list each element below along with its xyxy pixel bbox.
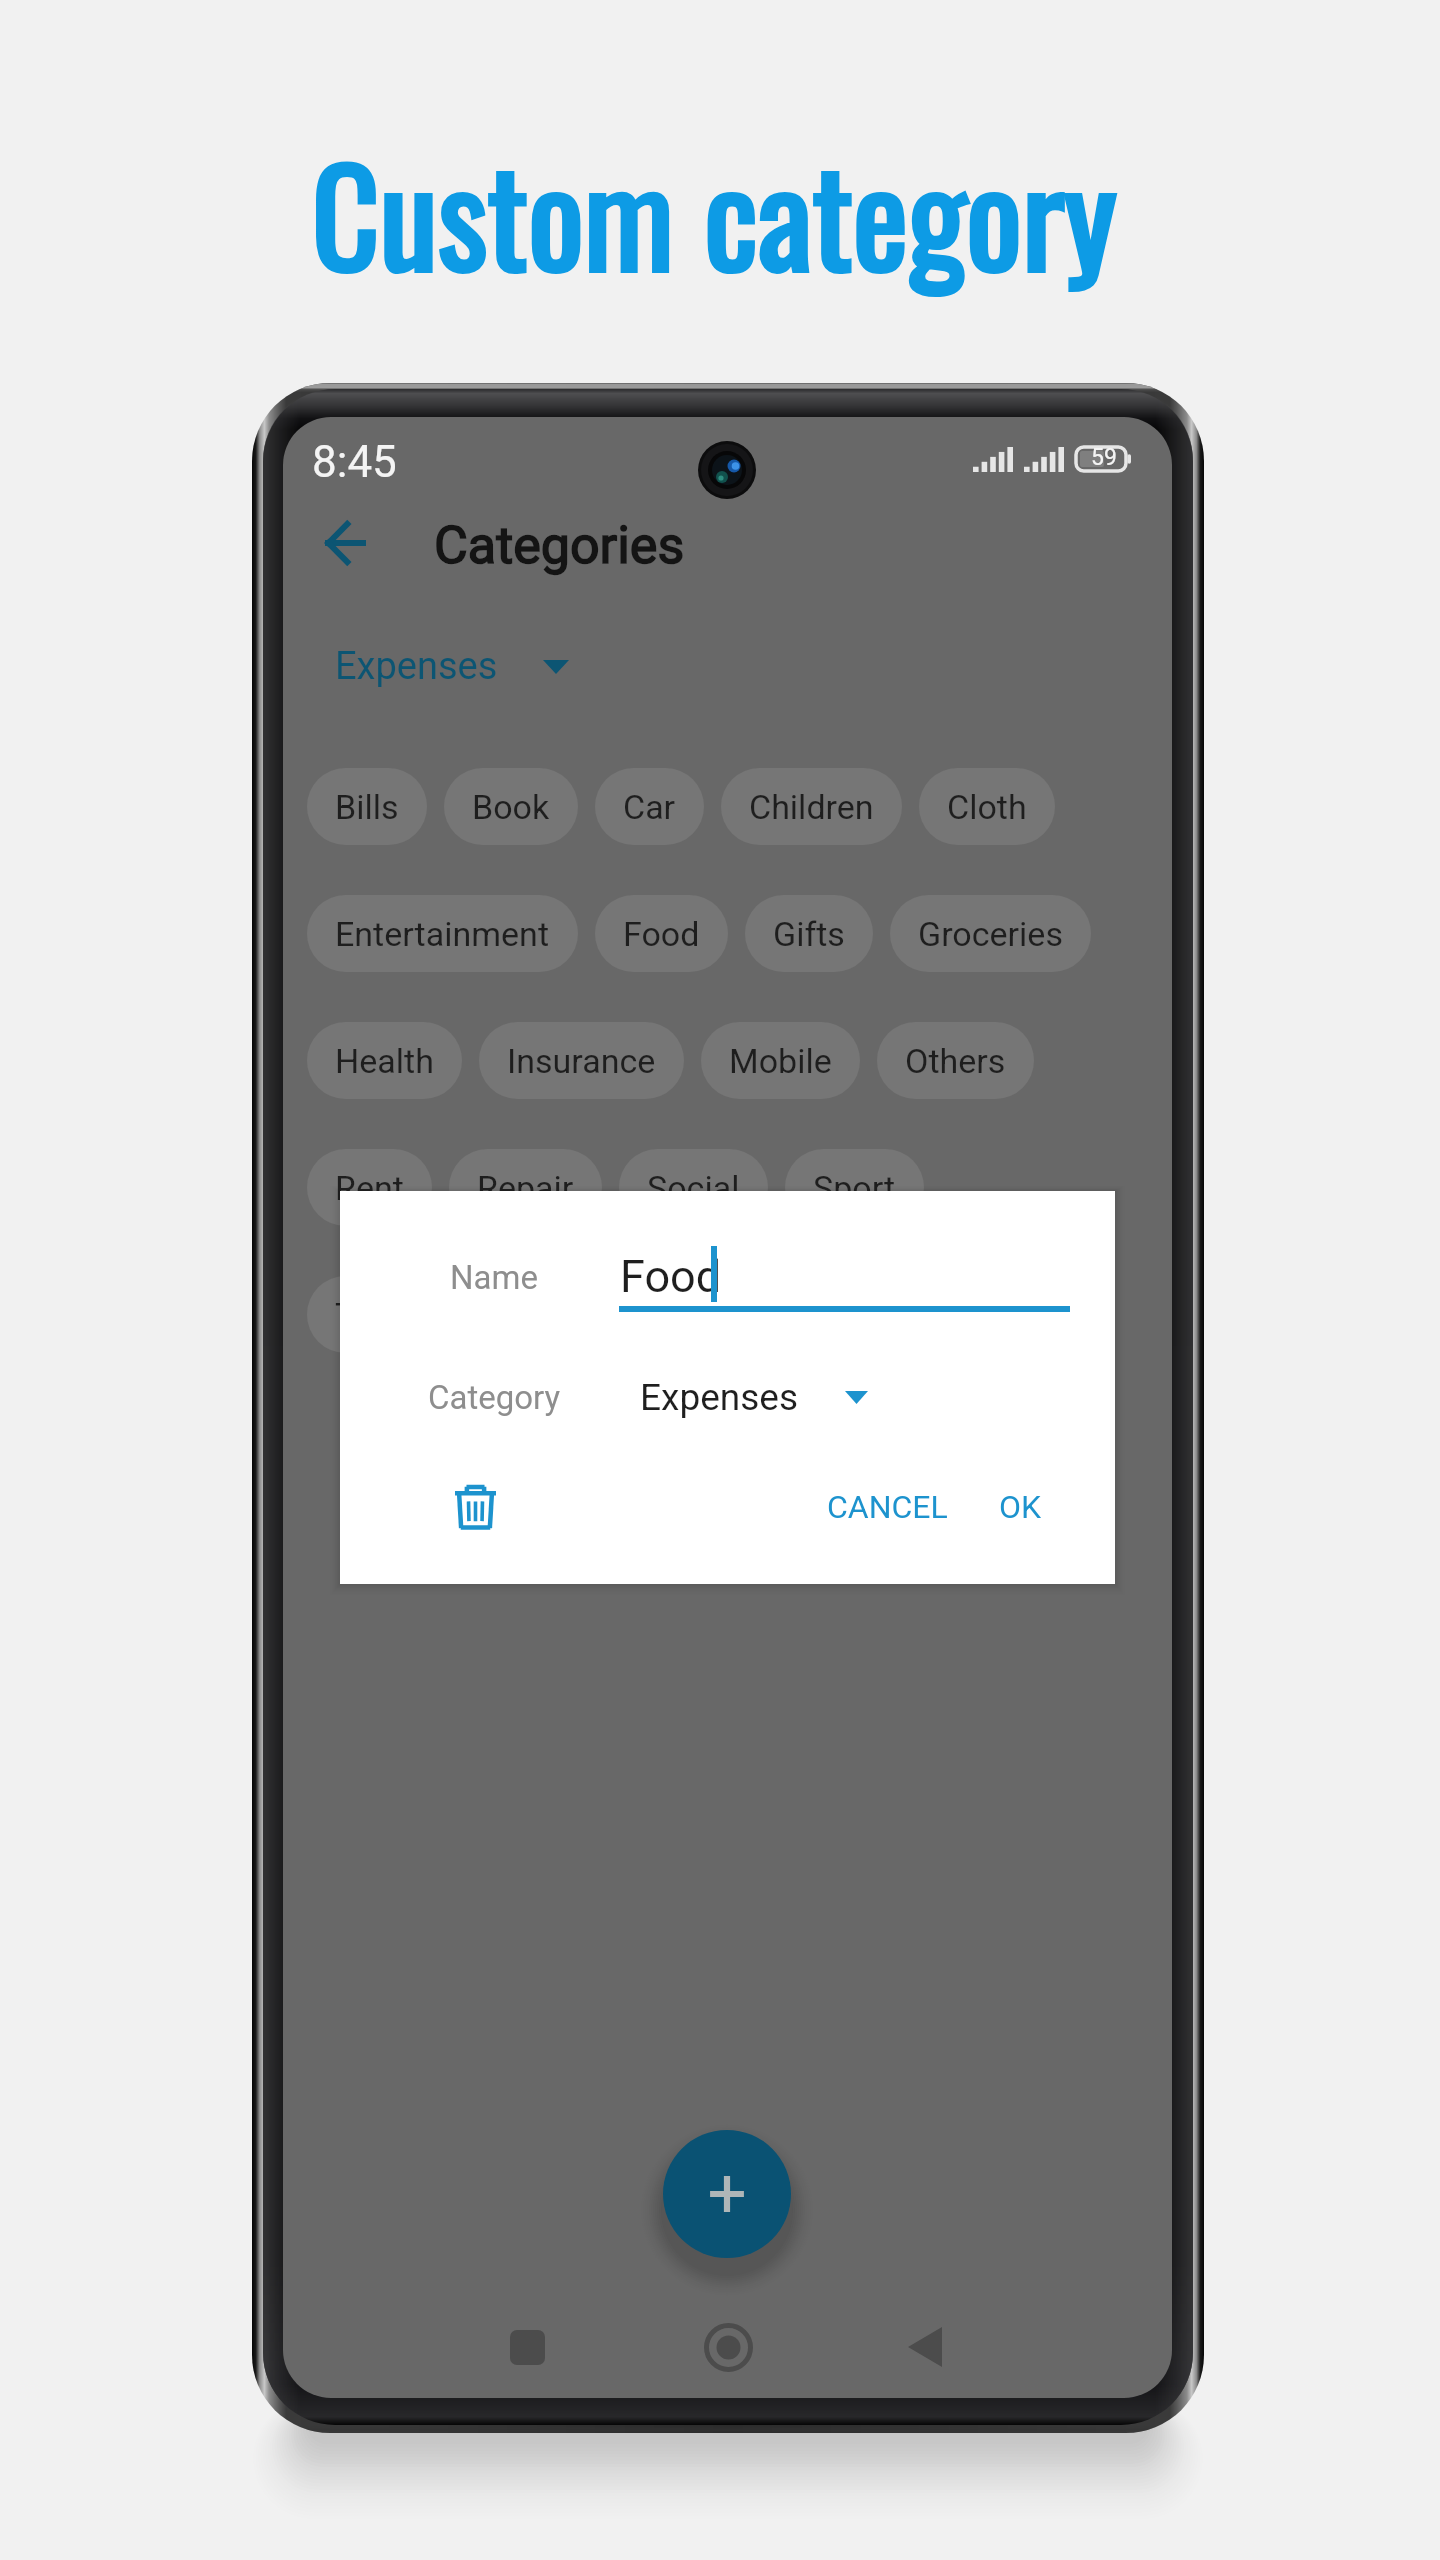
staticText: 59 xyxy=(1091,444,1117,471)
staticText: Utility xyxy=(846,1295,932,1335)
button[interactable]: Mobile xyxy=(701,1022,860,1099)
button[interactable]: Travel xyxy=(654,1276,801,1353)
button[interactable]: Gifts xyxy=(745,895,873,972)
button[interactable]: Repair xyxy=(449,1149,602,1226)
staticText: Social xyxy=(647,1168,740,1208)
staticText: Food xyxy=(623,914,700,954)
staticText: Bills xyxy=(335,787,399,827)
staticText: Children xyxy=(749,787,874,827)
staticText: Expenses xyxy=(335,644,498,689)
staticText: Insurance xyxy=(507,1041,656,1081)
staticText: 8:45 xyxy=(312,436,397,488)
button[interactable]: Children xyxy=(721,768,902,845)
staticText: Gifts xyxy=(773,914,845,954)
staticText: Food xyxy=(620,1250,722,1303)
button[interactable]: Book xyxy=(444,768,578,845)
staticText: Expenses xyxy=(640,1376,799,1419)
button[interactable]: OK xyxy=(983,1469,1058,1545)
button[interactable]: Recents xyxy=(479,2299,575,2395)
button[interactable]: CANCEL xyxy=(811,1469,964,1545)
staticText: Tax xyxy=(335,1295,389,1335)
button[interactable]: Back xyxy=(297,495,393,591)
button[interactable]: Cloth xyxy=(919,768,1055,845)
staticText: Health xyxy=(335,1041,434,1081)
staticText: Entertainment xyxy=(335,914,550,954)
button[interactable]: Back xyxy=(877,2299,973,2395)
button[interactable]: Insurance xyxy=(479,1022,684,1099)
staticText: Category xyxy=(428,1378,561,1417)
staticText: CANCEL xyxy=(827,1488,948,1526)
button[interactable]: Add category xyxy=(663,2130,791,2258)
button[interactable]: Groceries xyxy=(890,895,1091,972)
staticText: Mobile xyxy=(729,1041,832,1081)
button[interactable]: Delete xyxy=(427,1459,523,1555)
staticText: Car xyxy=(623,787,676,827)
staticText: Categories xyxy=(434,515,685,576)
staticText: Sport xyxy=(813,1168,896,1208)
staticText: Repair xyxy=(477,1168,574,1208)
staticText: Cloth xyxy=(947,787,1027,827)
button[interactable]: Tax xyxy=(307,1276,417,1353)
button[interactable]: Health xyxy=(307,1022,462,1099)
button[interactable]: Bills xyxy=(307,768,427,845)
staticText: Groceries xyxy=(918,914,1063,954)
button[interactable]: Food xyxy=(595,895,728,972)
button[interactable]: Sport xyxy=(785,1149,924,1226)
button[interactable]: Social xyxy=(619,1149,768,1226)
staticText: Book xyxy=(472,787,550,827)
staticText: Rent xyxy=(335,1168,404,1208)
button[interactable]: Home xyxy=(680,2299,776,2395)
staticText: Custom category xyxy=(0,114,1434,310)
staticText: Name xyxy=(450,1258,538,1297)
button[interactable]: Rent xyxy=(307,1149,432,1226)
button[interactable]: Utility xyxy=(818,1276,960,1353)
button[interactable]: Entertainment xyxy=(307,895,578,972)
staticText: Others xyxy=(905,1041,1006,1081)
button[interactable]: Others xyxy=(877,1022,1034,1099)
staticText: Travel xyxy=(682,1295,773,1335)
staticText: OK xyxy=(999,1488,1042,1526)
button[interactable]: Car xyxy=(595,768,704,845)
button[interactable]: Expenses xyxy=(323,632,581,701)
button[interactable]: Transport xyxy=(434,1276,637,1353)
button[interactable]: Expenses xyxy=(630,1368,878,1427)
